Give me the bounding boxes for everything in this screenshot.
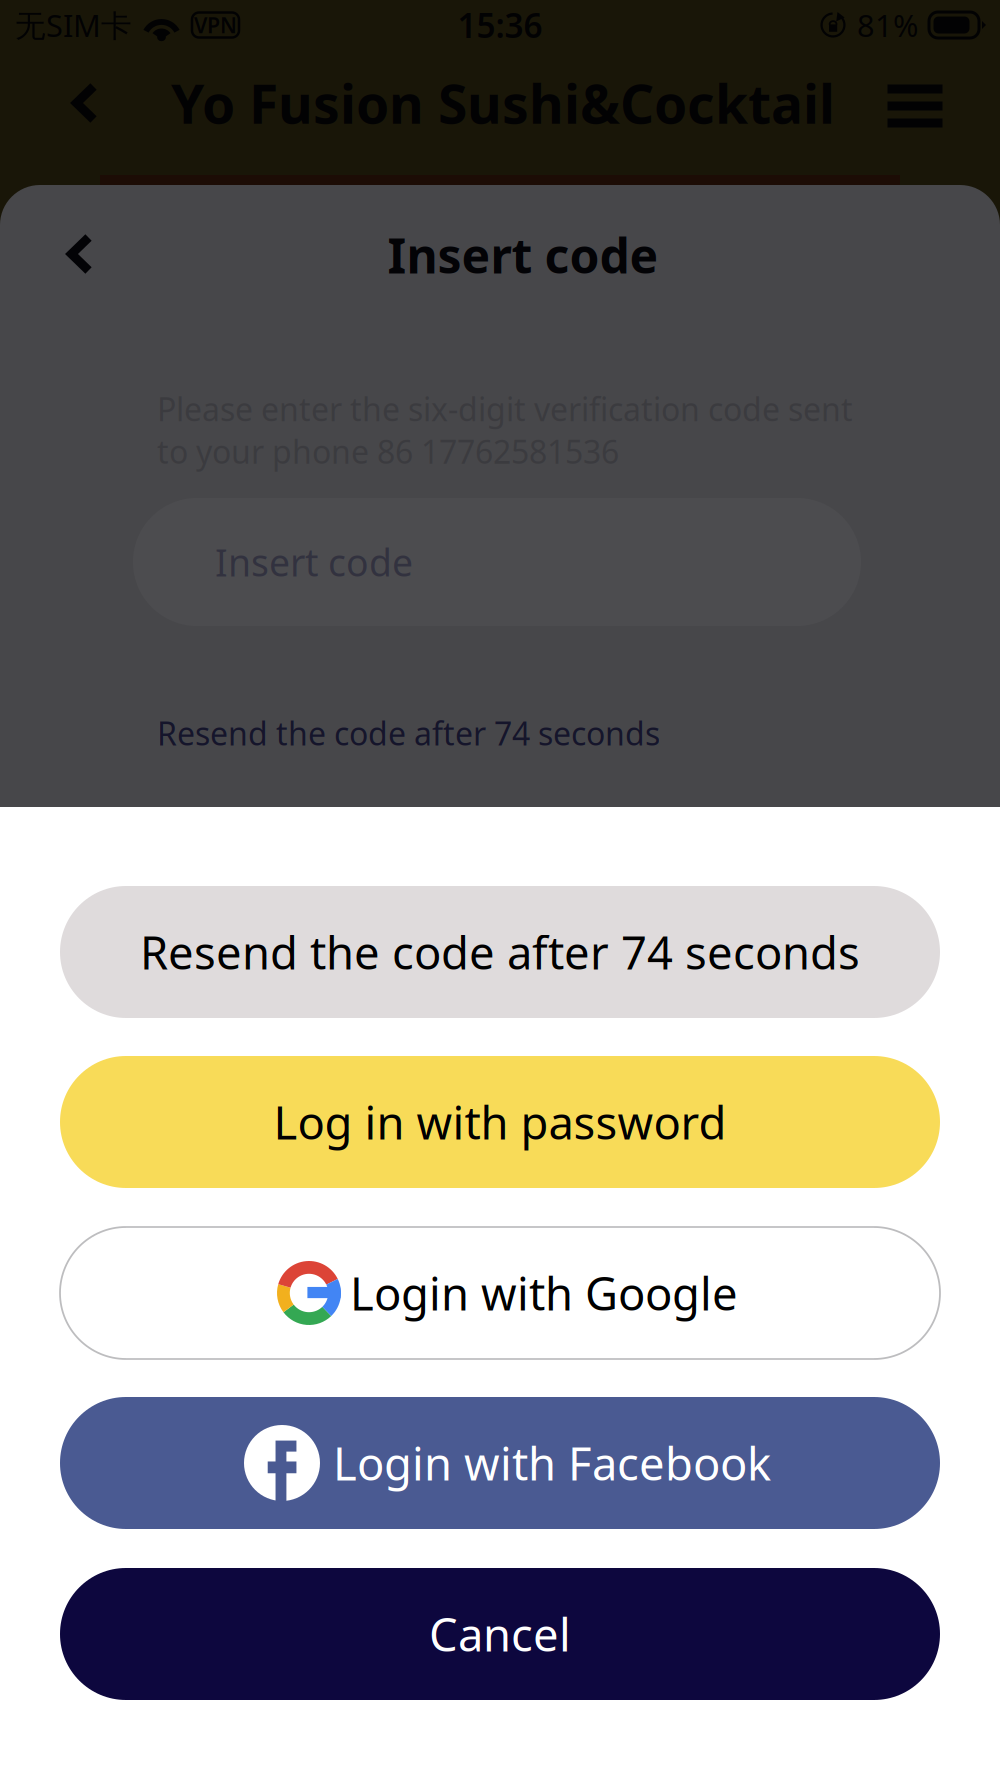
staticText: Resend the code after 74 seconds (140, 922, 860, 982)
staticText: Insert code (387, 223, 658, 287)
button[interactable]: Login with Google (60, 1227, 940, 1359)
button[interactable]: Login with Facebook (60, 1397, 940, 1529)
staticText: Login with Google (350, 1263, 738, 1323)
staticText: Please enter the six-digit verification … (157, 387, 853, 472)
staticText: Resend the code after 74 seconds (157, 712, 660, 754)
button[interactable]: Log in with password (60, 1056, 940, 1188)
staticText: Yo Fusion Sushi&Cocktail (171, 68, 835, 138)
button[interactable]: Back (34, 208, 126, 300)
staticText: Cancel (429, 1604, 571, 1664)
staticText: 15:36 (457, 3, 542, 47)
button[interactable]: Back (39, 56, 131, 150)
staticText: VPN (194, 11, 237, 39)
staticText: 无SIM卡 (15, 5, 132, 45)
staticText: 81% (857, 5, 918, 45)
button[interactable]: Resend the code after 74 seconds (60, 886, 940, 1018)
staticText: Login with Facebook (333, 1433, 771, 1493)
button[interactable]: Menu (869, 59, 961, 153)
staticText: Log in with password (273, 1092, 726, 1152)
button[interactable]: Cancel (60, 1568, 940, 1700)
staticText: Insert code (215, 537, 413, 587)
